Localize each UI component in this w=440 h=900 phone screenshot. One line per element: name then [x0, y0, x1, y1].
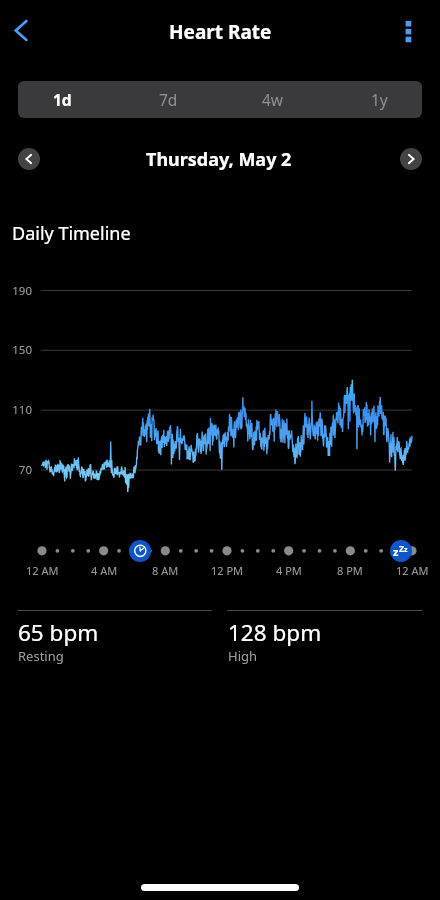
- button[interactable]: Next day: [400, 148, 422, 170]
- staticText: 4w: [262, 89, 284, 110]
- button[interactable]: Measurement time: [129, 540, 151, 562]
- staticText: 128 bpm: [228, 617, 322, 648]
- staticText: 70: [18, 462, 32, 478]
- button[interactable]: 1y: [329, 81, 422, 118]
- staticText: Z: [399, 542, 405, 554]
- staticText: 1d: [53, 89, 72, 110]
- button[interactable]: 7d: [118, 81, 218, 118]
- staticText: High: [228, 647, 258, 665]
- staticText: 65 bpm: [18, 617, 99, 648]
- staticText: 12 PM: [211, 563, 244, 578]
- staticText: 190: [12, 283, 32, 299]
- staticText: 8 AM: [152, 563, 179, 578]
- staticText: 7d: [159, 89, 178, 110]
- button[interactable]: Sleep: [390, 540, 412, 562]
- button[interactable]: Back: [0, 9, 42, 53]
- staticText: Thursday, May 2: [146, 147, 292, 172]
- staticText: 8 PM: [337, 563, 363, 578]
- staticText: Heart Rate: [169, 19, 272, 45]
- staticText: z: [404, 545, 408, 555]
- staticText: 4 AM: [91, 563, 118, 578]
- staticText: 150: [12, 342, 32, 358]
- staticText: z: [393, 544, 399, 559]
- staticText: Daily Timeline: [12, 221, 131, 246]
- button[interactable]: 65 bpm: [17, 610, 212, 670]
- staticText: 4 PM: [276, 563, 302, 578]
- button[interactable]: More options: [390, 9, 430, 53]
- staticText: Resting: [18, 647, 64, 665]
- staticText: 12 AM: [26, 563, 59, 578]
- staticText: 110: [12, 402, 32, 418]
- staticText: 12 AM: [396, 563, 429, 578]
- button[interactable]: 128 bpm: [227, 610, 423, 670]
- staticText: 1y: [371, 89, 388, 110]
- button[interactable]: 1d: [18, 81, 112, 118]
- button[interactable]: Previous day: [18, 148, 40, 170]
- button[interactable]: 4w: [223, 81, 323, 118]
